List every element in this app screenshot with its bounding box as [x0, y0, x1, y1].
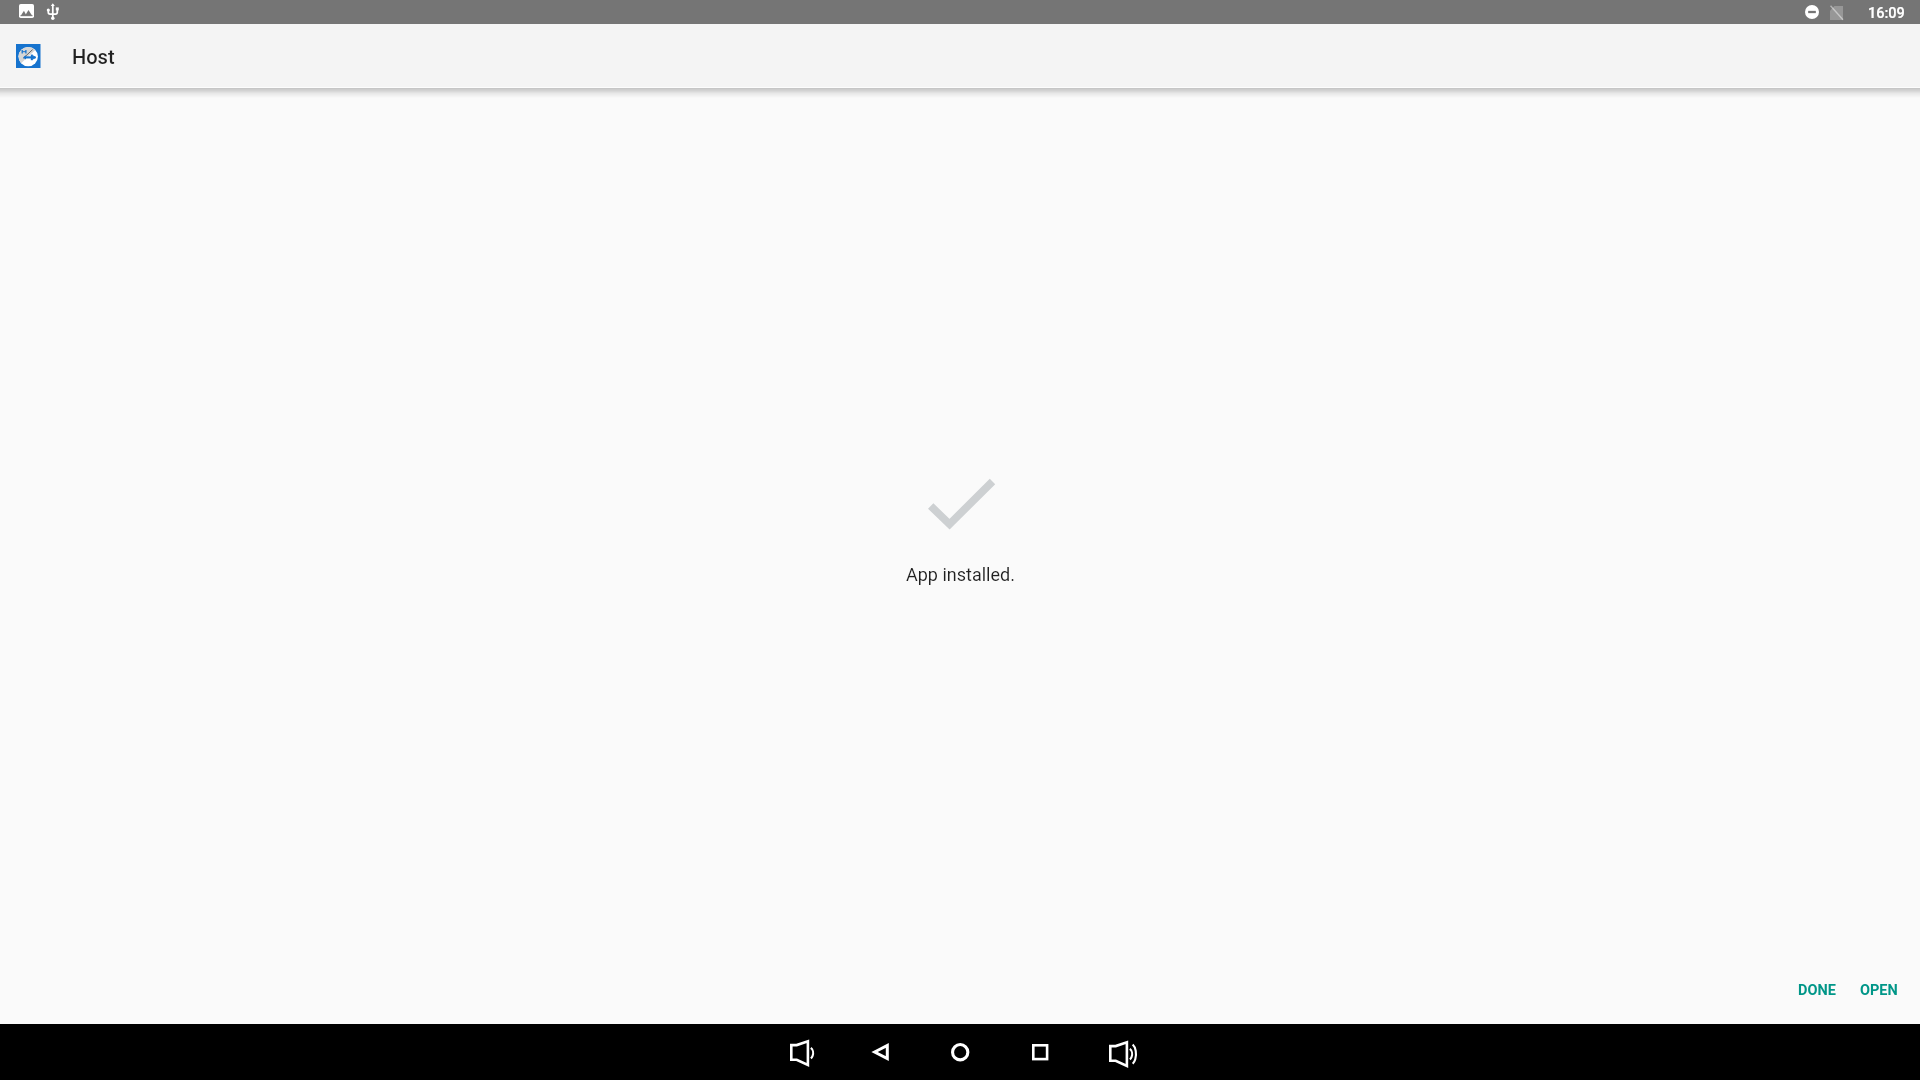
staticText: 16:09	[1868, 5, 1905, 22]
button[interactable]: DONE	[1784, 973, 1850, 1008]
staticText: DONE	[1798, 982, 1836, 999]
staticText: Host	[72, 45, 115, 68]
button[interactable]: OPEN	[1846, 973, 1912, 1008]
button[interactable]: Volume up	[1095, 1024, 1151, 1080]
button[interactable]: Volume down	[774, 1024, 830, 1080]
staticText: App installed.	[906, 564, 1015, 585]
button[interactable]: Recents	[1012, 1024, 1068, 1080]
staticText: OPEN	[1860, 982, 1898, 999]
button[interactable]: Home	[932, 1024, 988, 1080]
button[interactable]: Back	[852, 1024, 908, 1080]
